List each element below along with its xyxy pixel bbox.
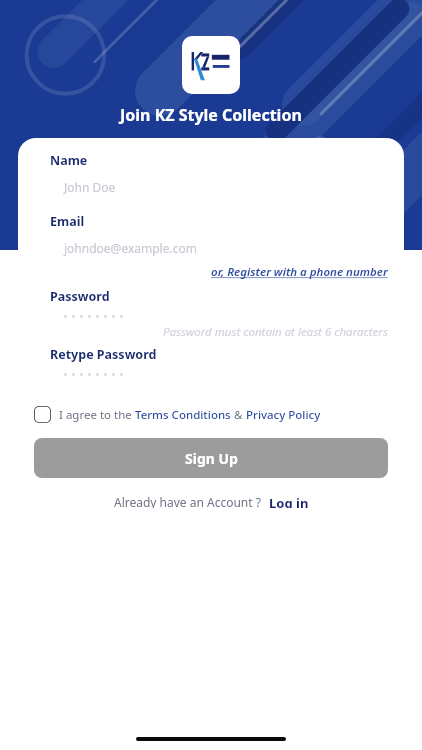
staticText: Already have an Account ? [114,494,261,508]
staticText: Terms Conditions [135,407,231,423]
staticText: Join KZ Style Collection [120,104,302,126]
staticText: Sign Up [185,449,238,468]
staticText: Email [50,213,85,230]
button[interactable]: or, Register with a phone number [211,264,388,280]
button[interactable]: Log in [269,494,309,508]
staticText: I agree to the [59,407,135,423]
staticText: Log in [269,494,309,508]
button[interactable]: John Doe [64,179,116,195]
staticText: Name [50,152,88,169]
staticText: Password must contain at least 6 charact… [163,324,388,340]
button[interactable]: I agree to the [34,406,388,423]
staticText: or, Register with a phone number [211,264,388,280]
button[interactable] [64,315,123,318]
button[interactable]: johndoe@example.com [64,240,197,256]
staticText: Privacy Policy [246,407,321,423]
button[interactable] [64,373,123,376]
staticText: Retype Password [50,346,157,363]
staticText: Password [50,288,110,305]
staticText: & [231,407,246,423]
button[interactable]: Sign Up [34,438,388,478]
